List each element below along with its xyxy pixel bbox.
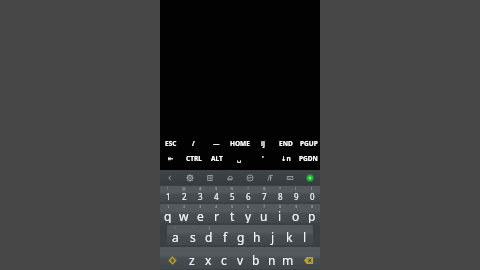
staticText: 4	[215, 204, 218, 209]
button[interactable]: (	[288, 186, 304, 202]
button[interactable]: &	[256, 186, 272, 202]
button[interactable]: #	[192, 186, 208, 202]
staticText: z	[189, 252, 195, 268]
button[interactable]: Shift	[160, 247, 184, 269]
staticText: 4	[214, 191, 219, 202]
staticText: ALT	[211, 154, 223, 163]
staticText: /	[192, 139, 195, 148]
button[interactable]: 6	[240, 204, 256, 223]
button[interactable]: 2	[176, 204, 192, 223]
staticText: e	[197, 208, 204, 223]
staticText: 3	[199, 204, 202, 209]
button[interactable]: $	[208, 186, 224, 202]
staticText: ↓n	[281, 154, 291, 163]
button[interactable]: ij	[251, 136, 274, 151]
staticText: v	[237, 252, 244, 268]
button[interactable]: '	[251, 151, 274, 166]
button[interactable]: %	[224, 186, 240, 202]
button[interactable]: 1	[160, 204, 176, 223]
staticText: r	[214, 208, 219, 223]
staticText: `	[192, 225, 194, 230]
button[interactable]: Font	[260, 170, 280, 185]
button[interactable]: )	[304, 186, 320, 202]
button[interactable]: z	[184, 247, 200, 269]
button[interactable]: j	[265, 225, 281, 245]
button[interactable]: 9	[288, 204, 304, 223]
button[interactable]: m	[280, 247, 296, 269]
staticText: 3	[198, 191, 203, 202]
button[interactable]: !	[160, 186, 176, 202]
button[interactable]: 0	[304, 204, 320, 223]
staticText: 0	[311, 204, 314, 209]
staticText: y	[245, 208, 252, 223]
staticText: 1	[167, 204, 170, 209]
button[interactable]: c	[216, 247, 232, 269]
staticText: ^	[247, 186, 250, 191]
staticText: k	[286, 229, 293, 245]
button[interactable]: Backspace	[296, 247, 320, 269]
button[interactable]: /	[182, 136, 205, 151]
staticText: 1	[166, 191, 171, 202]
button[interactable]: v	[232, 247, 248, 269]
button[interactable]: Back	[160, 170, 180, 185]
button[interactable]: Layout	[280, 170, 300, 185]
staticText: ESC	[165, 139, 177, 148]
button[interactable]: f	[217, 225, 233, 245]
button[interactable]: 7	[256, 204, 272, 223]
staticText: f	[223, 229, 228, 245]
button[interactable]: ␣	[228, 151, 251, 166]
button[interactable]: ALT	[205, 151, 228, 166]
staticText: &	[263, 186, 266, 191]
button[interactable]: x	[200, 247, 216, 269]
button[interactable]: h	[249, 225, 265, 245]
button[interactable]: PGUP	[297, 136, 320, 151]
staticText: PGUP	[300, 139, 318, 148]
button[interactable]: l	[297, 225, 313, 245]
button[interactable]: 4	[208, 204, 224, 223]
staticText: ij	[261, 139, 265, 148]
button[interactable]: PGDN	[297, 151, 320, 166]
button[interactable]: Gestures	[220, 170, 240, 185]
staticText: 8	[278, 191, 283, 202]
staticText: ␣	[237, 155, 242, 163]
staticText: n	[268, 252, 276, 268]
button[interactable]: *	[272, 186, 288, 202]
staticText: )	[311, 186, 313, 191]
button[interactable]: 5	[224, 204, 240, 223]
button[interactable]: ESC	[160, 136, 182, 151]
button[interactable]: b	[248, 247, 264, 269]
button[interactable]: HOME	[228, 136, 251, 151]
button[interactable]: n	[264, 247, 280, 269]
button[interactable]: k	[281, 225, 297, 245]
staticText: g	[237, 229, 245, 245]
staticText: d	[205, 229, 213, 245]
staticText: 6	[246, 191, 251, 202]
button[interactable]: CTRL	[182, 151, 205, 166]
button[interactable]: ^	[240, 186, 256, 202]
staticText: 8	[279, 204, 282, 209]
button[interactable]: g	[233, 225, 249, 245]
button[interactable]: |	[201, 225, 217, 245]
staticText: 9	[294, 191, 299, 202]
button[interactable]: ~	[167, 225, 184, 245]
button[interactable]: Voice input	[240, 170, 260, 185]
button[interactable]: ↓n	[274, 151, 297, 166]
staticText: t	[230, 208, 235, 223]
button[interactable]: Clipboard	[200, 170, 220, 185]
button[interactable]: Settings	[180, 170, 200, 185]
button[interactable]: ⇤	[160, 151, 182, 166]
button[interactable]: —	[205, 136, 228, 151]
staticText: '	[262, 154, 264, 163]
button[interactable]: 3	[192, 204, 208, 223]
button[interactable]: `	[184, 225, 201, 245]
staticText: b	[252, 252, 260, 268]
staticText: HOME	[230, 139, 250, 148]
button[interactable]: END	[274, 136, 297, 151]
button[interactable]: Status	[300, 170, 320, 185]
button[interactable]: @	[176, 186, 192, 202]
staticText: CTRL	[186, 154, 202, 163]
button[interactable]: 8	[272, 204, 288, 223]
staticText: s	[190, 229, 196, 245]
staticText: 9	[295, 204, 298, 209]
staticText: 2	[182, 191, 187, 202]
